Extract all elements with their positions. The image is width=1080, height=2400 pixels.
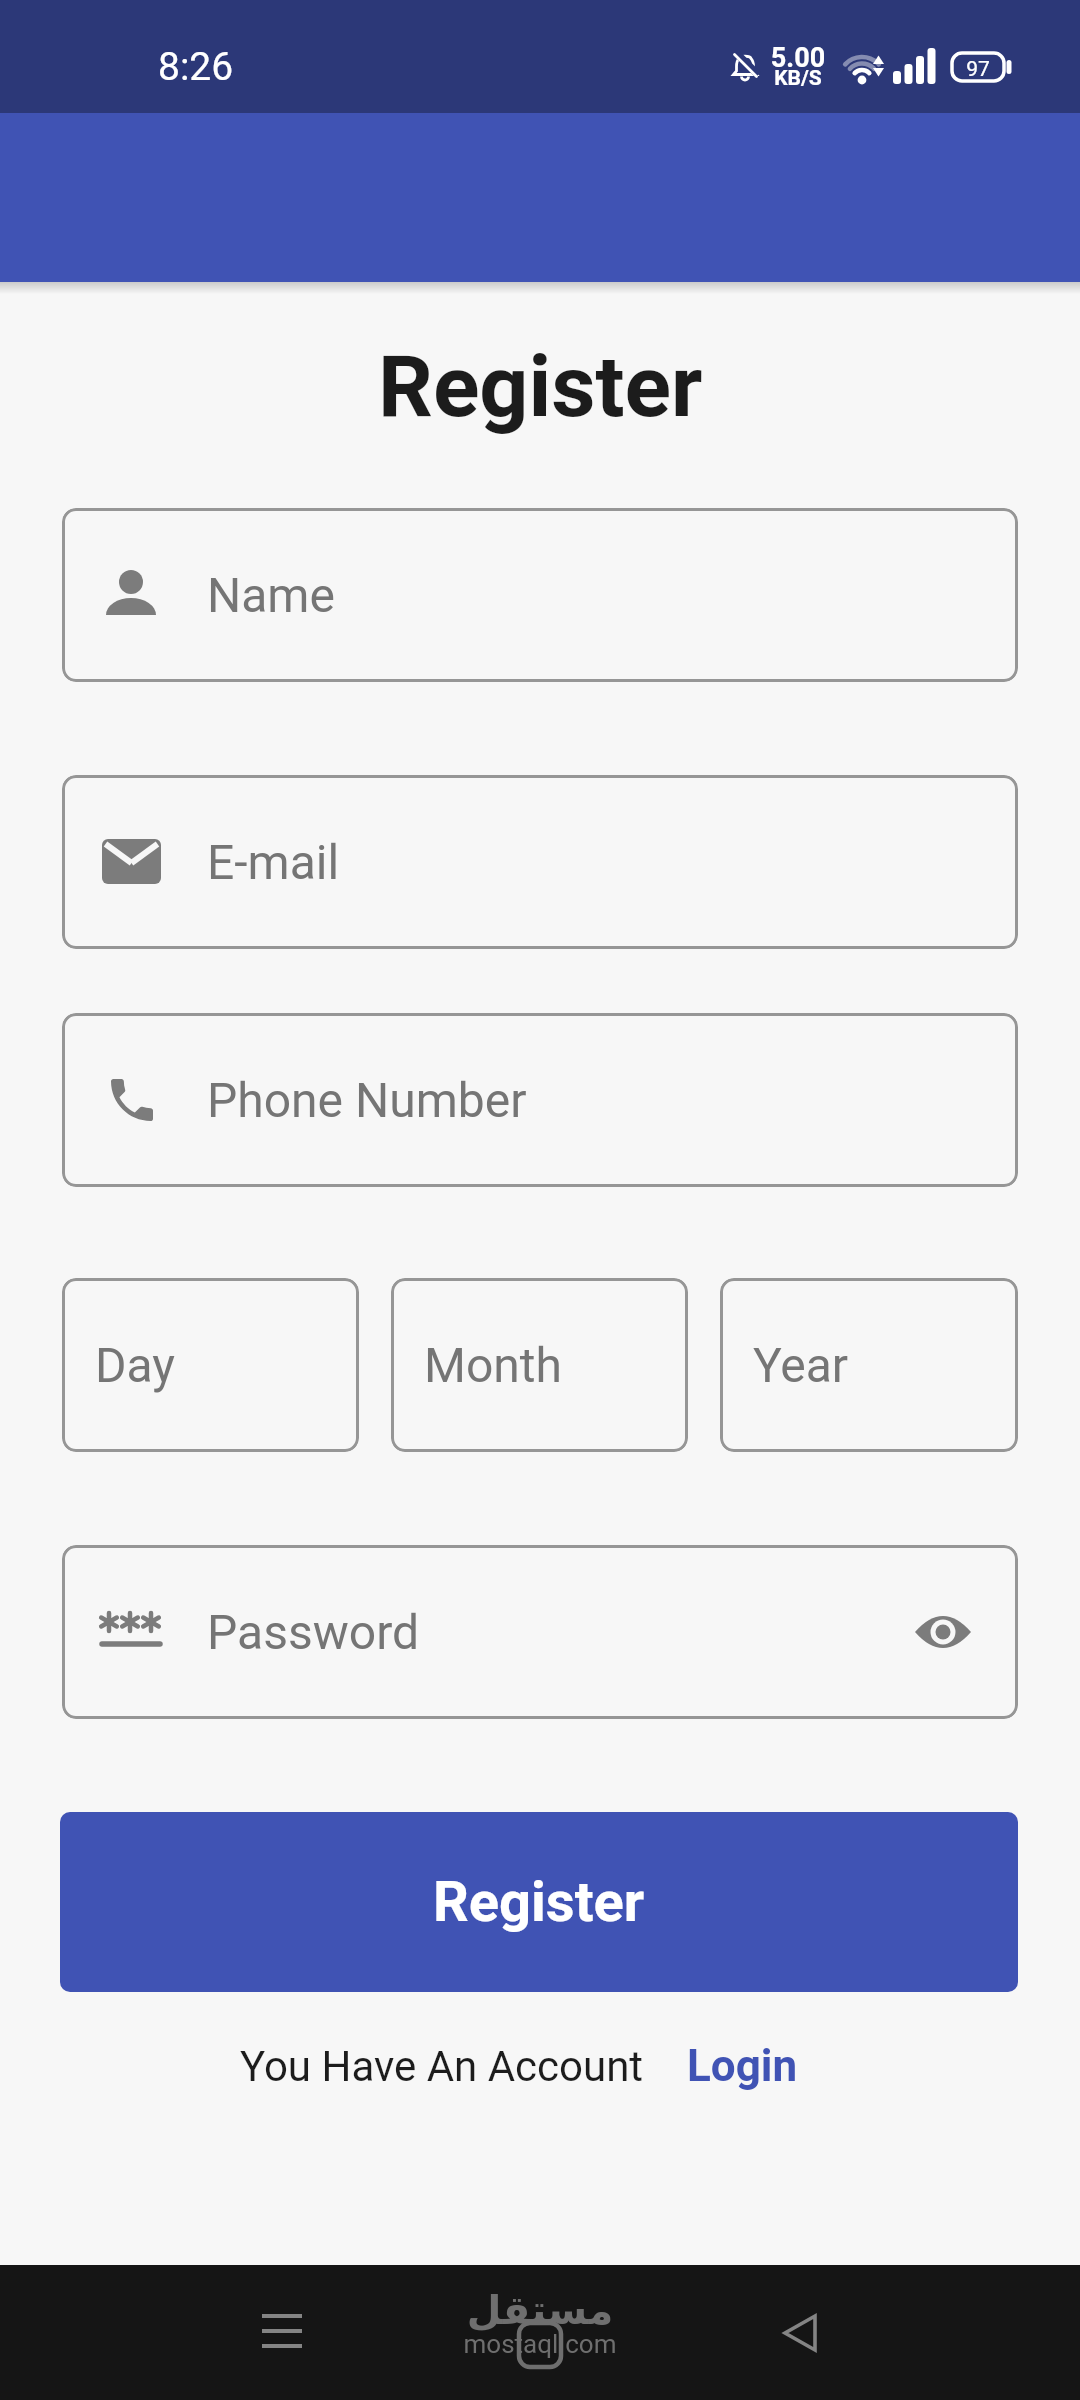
staticText: You Have An Account <box>240 2042 644 2091</box>
button[interactable]: Password <box>62 1545 1018 1719</box>
button[interactable]: Name <box>62 508 1018 682</box>
staticText: Month <box>424 1337 562 1393</box>
staticText: Password <box>207 1604 420 1660</box>
staticText: 8:26 <box>158 44 234 90</box>
staticText: E-mail <box>207 834 340 890</box>
staticText: KB/S <box>763 66 833 91</box>
button[interactable]: Day <box>62 1278 359 1452</box>
staticText: Name <box>207 567 335 623</box>
staticText: Year <box>753 1337 849 1393</box>
staticText: 5.00 <box>763 42 833 74</box>
button[interactable] <box>915 1612 971 1652</box>
staticText: Register <box>378 336 703 437</box>
button[interactable] <box>242 2291 322 2371</box>
staticText: Day <box>95 1337 175 1393</box>
staticText: 97 <box>952 57 1004 82</box>
button[interactable]: Login <box>687 2040 798 2092</box>
staticText: Register <box>433 1869 645 1935</box>
button[interactable] <box>755 2293 845 2373</box>
button[interactable]: E-mail <box>62 775 1018 949</box>
button[interactable]: Phone Number <box>62 1013 1018 1187</box>
button[interactable]: Year <box>720 1278 1018 1452</box>
button[interactable]: Month <box>391 1278 688 1452</box>
staticText: mostaql.com <box>0 2329 1080 2359</box>
staticText: Phone Number <box>207 1072 527 1128</box>
staticText: مستقل <box>0 2287 1080 2334</box>
button[interactable]: Register <box>60 1812 1018 1992</box>
